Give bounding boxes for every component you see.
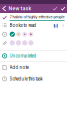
button[interactable]: Colour <box>9 31 15 37</box>
button[interactable]: Colour <box>15 31 22 37</box>
button[interactable]: Colour <box>28 40 34 46</box>
button[interactable]: Colour <box>22 31 28 37</box>
staticText: Schedule this task <box>10 76 43 82</box>
button[interactable]: Colour <box>15 40 22 46</box>
button[interactable]: Colour <box>22 40 28 46</box>
button[interactable]: Uncompleted <box>0 51 67 61</box>
button[interactable]: Save task <box>59 4 67 13</box>
staticText: Books to read <box>10 23 37 28</box>
staticText: Uncompleted <box>10 53 37 59</box>
button[interactable]: Add note <box>0 62 67 73</box>
button[interactable]: Colour <box>28 31 34 37</box>
staticText: Add note <box>10 65 29 70</box>
button[interactable]: Back <box>0 4 8 13</box>
button[interactable]: Schedule this task <box>0 73 67 85</box>
button[interactable]: Colour <box>9 40 15 46</box>
staticText: 7 habits of highly effective people <box>10 15 65 19</box>
button[interactable]: Books to read <box>0 21 67 30</box>
staticText: New task <box>8 5 31 12</box>
button[interactable]: Complete task <box>51 4 59 13</box>
